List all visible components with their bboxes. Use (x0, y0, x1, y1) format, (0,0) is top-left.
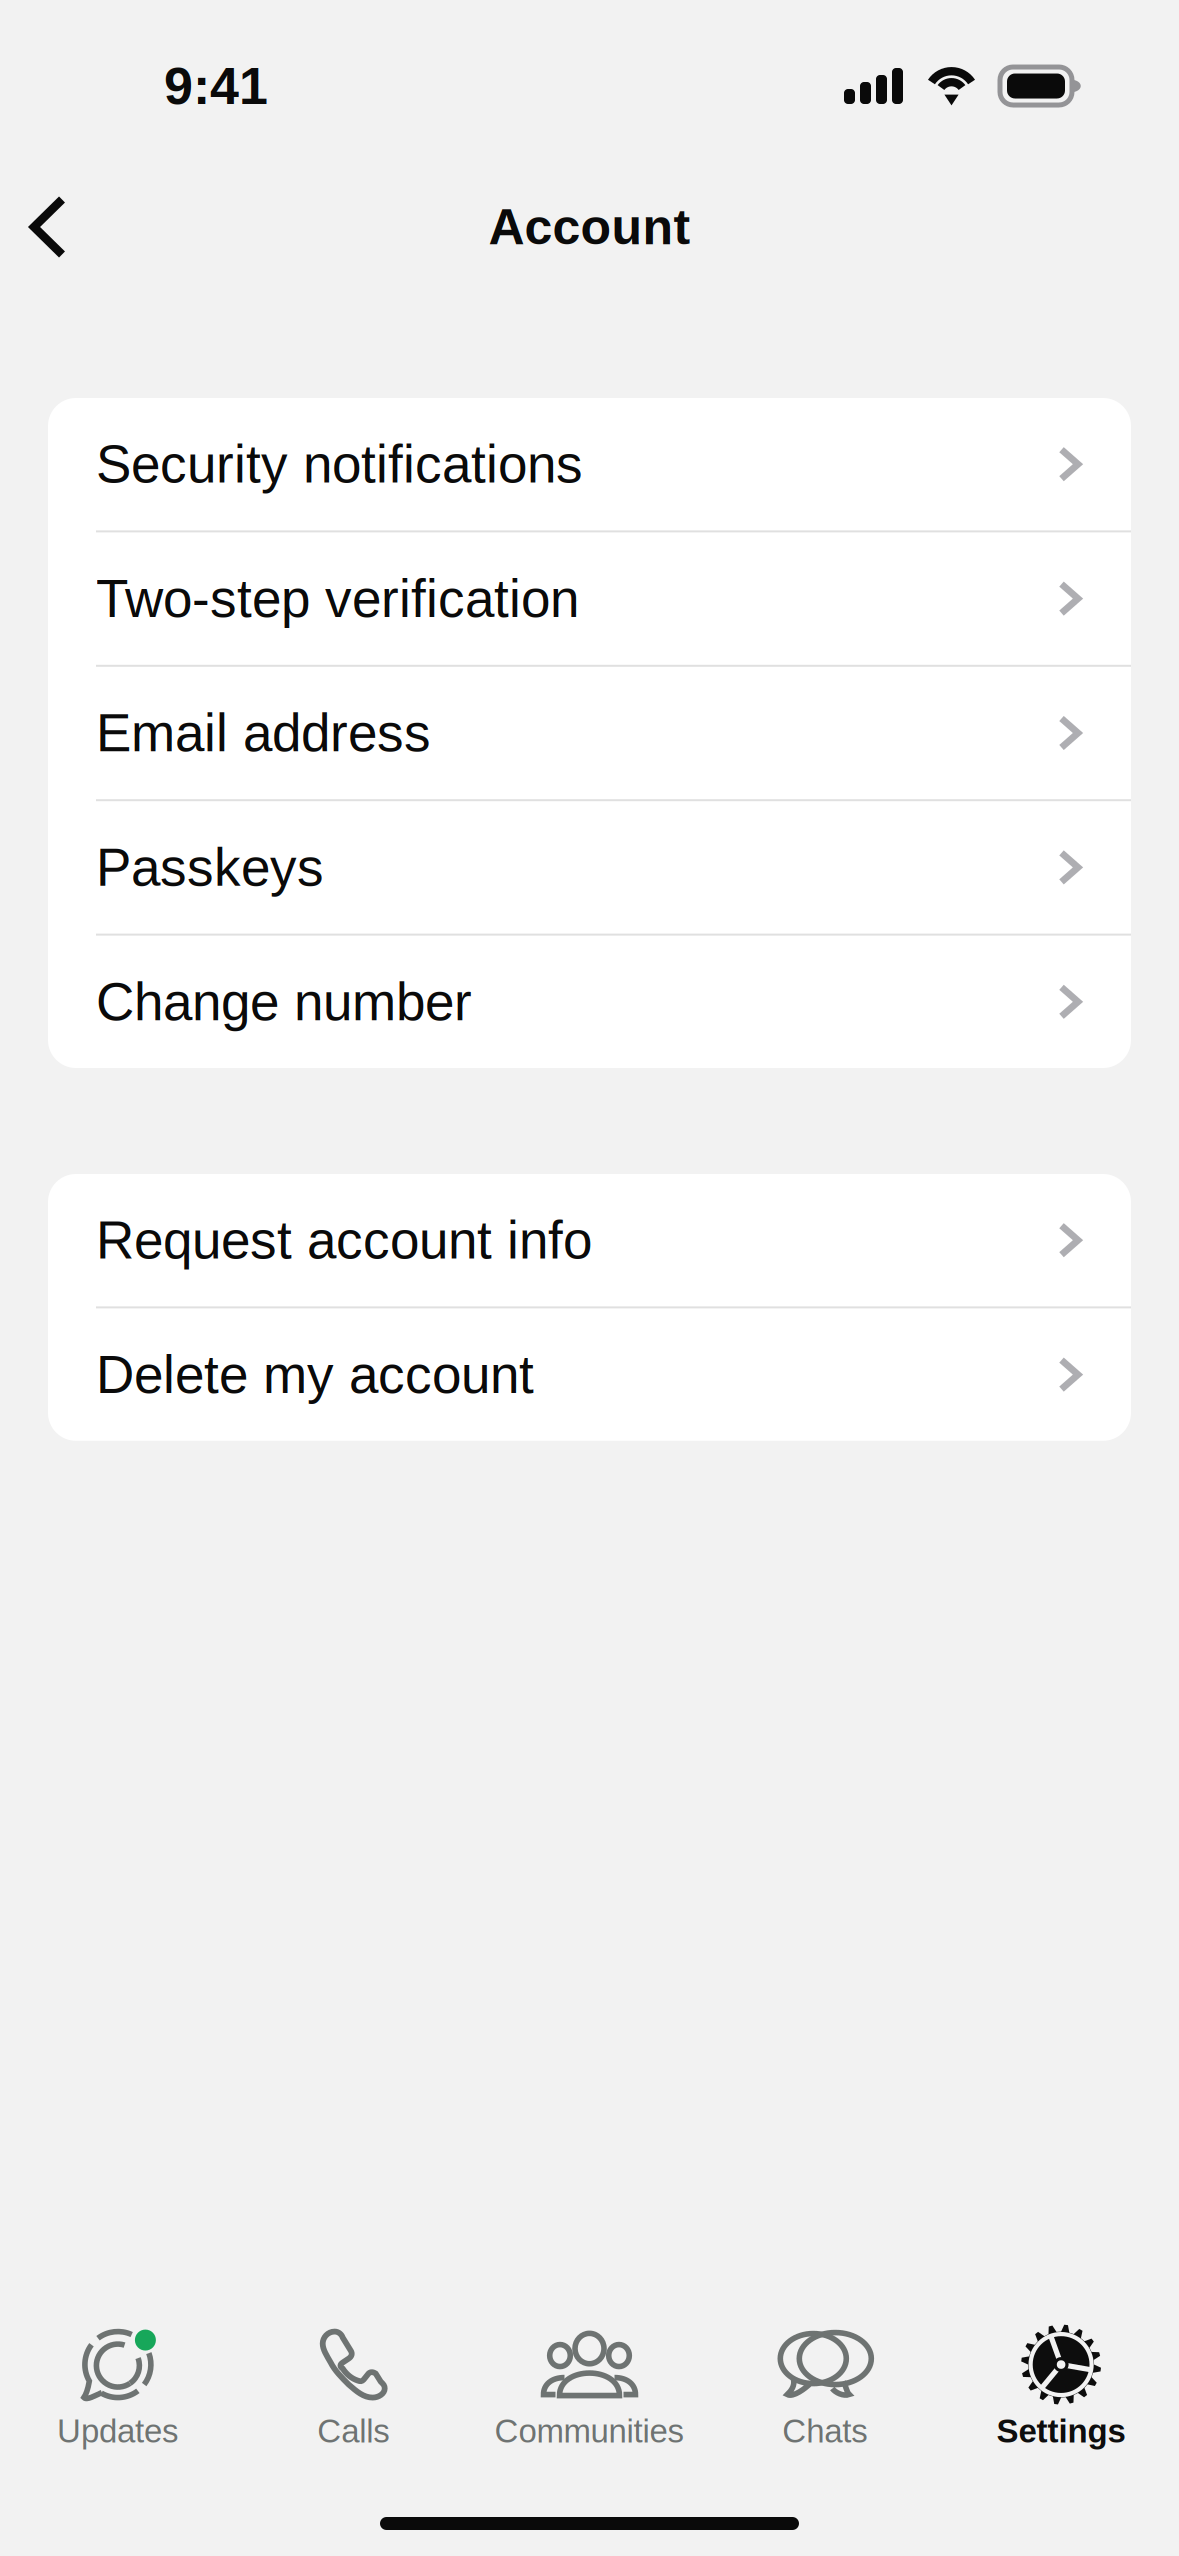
button[interactable]: Chats (707, 2321, 943, 2453)
button[interactable]: Change number (48, 936, 1131, 1068)
staticText: Passkeys (96, 838, 324, 897)
staticText: Delete my account (96, 1345, 534, 1404)
staticText: Communities (494, 2413, 684, 2449)
staticText: Updates (57, 2413, 179, 2449)
button[interactable]: Two-step verification (48, 532, 1131, 665)
button[interactable]: Back (6, 165, 90, 289)
staticText: Two-step verification (96, 569, 579, 628)
button[interactable]: Delete my account (48, 1308, 1131, 1441)
button[interactable]: Email address (48, 667, 1131, 799)
button[interactable]: Request account info (48, 1174, 1131, 1306)
staticText: 9:41 (164, 57, 268, 115)
staticText: Chats (782, 2413, 868, 2449)
staticText: Change number (96, 972, 472, 1031)
staticText: Account (488, 199, 690, 255)
button[interactable]: Calls (236, 2321, 472, 2453)
button[interactable]: Settings (943, 2321, 1179, 2453)
button[interactable]: Updates (0, 2321, 236, 2453)
button[interactable]: Passkeys (48, 801, 1131, 934)
staticText: Calls (317, 2413, 390, 2449)
button[interactable]: Security notifications (48, 398, 1131, 530)
button[interactable]: Communities (472, 2321, 707, 2453)
staticText: Security notifications (96, 435, 583, 494)
staticText: Email address (96, 703, 431, 763)
staticText: Settings (997, 2413, 1126, 2449)
staticText: Request account info (96, 1211, 592, 1270)
